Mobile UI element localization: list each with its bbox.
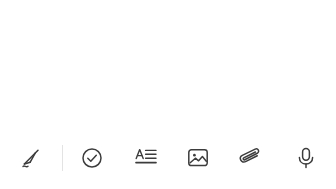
button[interactable]: Handwriting bbox=[0, 136, 62, 180]
button[interactable]: Text formatting bbox=[120, 136, 172, 180]
button[interactable]: Voice input bbox=[276, 136, 336, 180]
button[interactable]: Insert image bbox=[172, 136, 224, 180]
button[interactable]: Attach file bbox=[224, 136, 276, 180]
button[interactable]: Checklist bbox=[63, 136, 120, 180]
